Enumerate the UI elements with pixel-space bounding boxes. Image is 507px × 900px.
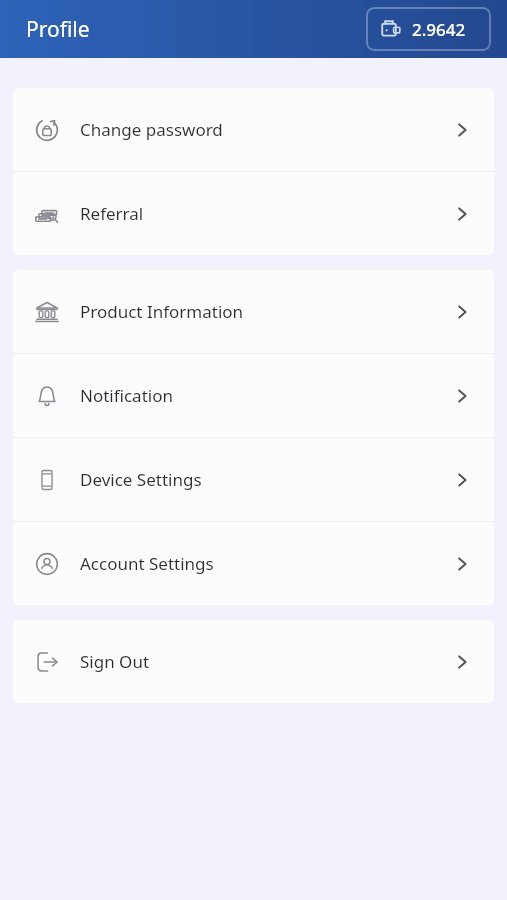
button[interactable]: Change password (13, 88, 494, 171)
staticText: 2.9642 (412, 18, 466, 41)
button[interactable]: Account Settings (13, 522, 494, 605)
button[interactable]: Wallet balance (366, 7, 491, 51)
staticText: Product Information (80, 300, 244, 323)
staticText: Referral (80, 202, 144, 225)
staticText: Change password (80, 118, 223, 141)
staticText: Profile (26, 15, 90, 44)
button[interactable]: Referral (13, 172, 494, 255)
staticText: Notification (80, 384, 173, 407)
staticText: Sign Out (80, 650, 150, 673)
button[interactable]: Notification (13, 354, 494, 437)
button[interactable]: Product Information (13, 270, 494, 353)
button[interactable]: Device Settings (13, 438, 494, 521)
button[interactable]: Sign Out (13, 620, 494, 703)
staticText: Account Settings (80, 552, 214, 575)
staticText: Device Settings (80, 468, 202, 491)
